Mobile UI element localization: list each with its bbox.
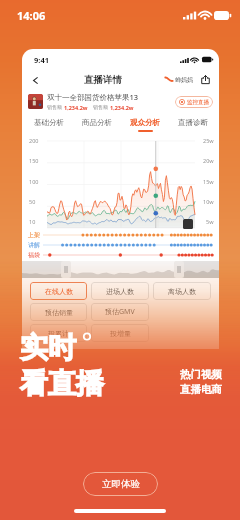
staticText: 预估销量 — [45, 308, 73, 317]
staticText: 20w — [203, 157, 214, 164]
staticText: 观众分析 — [130, 118, 160, 127]
staticText: 销售额 — [93, 104, 110, 111]
button[interactable]: 监控直播 — [175, 96, 213, 108]
button[interactable]: Range start — [61, 261, 71, 278]
staticText: 看直播 — [20, 366, 104, 401]
button[interactable]: 预估GMV — [91, 303, 149, 321]
button[interactable]: 进场人数 — [91, 282, 149, 300]
staticText: 立即体验 — [102, 478, 140, 490]
button[interactable]: 商品分析 — [73, 114, 121, 136]
staticText: 直播电商 — [180, 383, 222, 396]
staticText: 5w — [206, 218, 214, 225]
staticText: 100 — [29, 178, 39, 185]
staticText: 实时 — [20, 330, 76, 365]
staticText: 投累计 — [48, 329, 69, 338]
staticText: 上架 — [28, 231, 40, 239]
staticText: 蝉妈妈 — [175, 76, 193, 84]
button[interactable]: 立即体验 — [83, 472, 158, 496]
staticText: 双十一全部国货价格苹果13 — [47, 92, 139, 102]
staticText: 1,234.2w — [64, 104, 88, 111]
button[interactable]: 直播诊断 — [169, 114, 217, 136]
button[interactable]: Share — [200, 74, 211, 85]
staticText: 福袋 — [28, 251, 40, 259]
button[interactable]: 投增量 — [91, 324, 149, 342]
staticText: 50 — [29, 198, 36, 205]
button[interactable]: 在线人数 — [30, 282, 87, 300]
staticText: 预估GMV — [105, 307, 135, 317]
staticText: 9:41 — [34, 55, 49, 65]
button[interactable]: 观众分析 — [121, 114, 169, 136]
staticText: 监控直播 — [187, 99, 209, 106]
staticText: 直播详情 — [84, 74, 122, 86]
staticText: 1,234.2w — [110, 104, 134, 111]
staticText: 10w — [203, 198, 214, 205]
staticText: 直播诊断 — [178, 118, 208, 127]
button[interactable]: 投累计 — [30, 324, 87, 342]
button[interactable]: 基础分析 — [24, 114, 73, 136]
staticText: 进场人数 — [106, 287, 134, 296]
staticText: 投增量 — [110, 329, 131, 338]
staticText: 在线人数 — [45, 287, 73, 296]
staticText: 25w — [203, 137, 214, 144]
staticText: 离场人数 — [168, 287, 196, 296]
staticText: 热门视频 — [180, 368, 222, 381]
button[interactable]: Range end — [174, 261, 184, 278]
staticText: 讲解 — [28, 241, 40, 249]
staticText: 14:06 — [17, 8, 46, 23]
button[interactable]: Back — [28, 73, 42, 87]
staticText: 200 — [29, 137, 39, 144]
staticText: 15w — [203, 178, 214, 185]
button[interactable]: 离场人数 — [153, 282, 211, 300]
staticText: 150 — [29, 157, 39, 164]
staticText: 10 — [29, 218, 36, 225]
staticText: 商品分析 — [82, 118, 112, 127]
button[interactable]: 预估销量 — [30, 303, 87, 321]
staticText: 销售额 — [47, 104, 64, 111]
staticText: 基础分析 — [34, 118, 64, 127]
